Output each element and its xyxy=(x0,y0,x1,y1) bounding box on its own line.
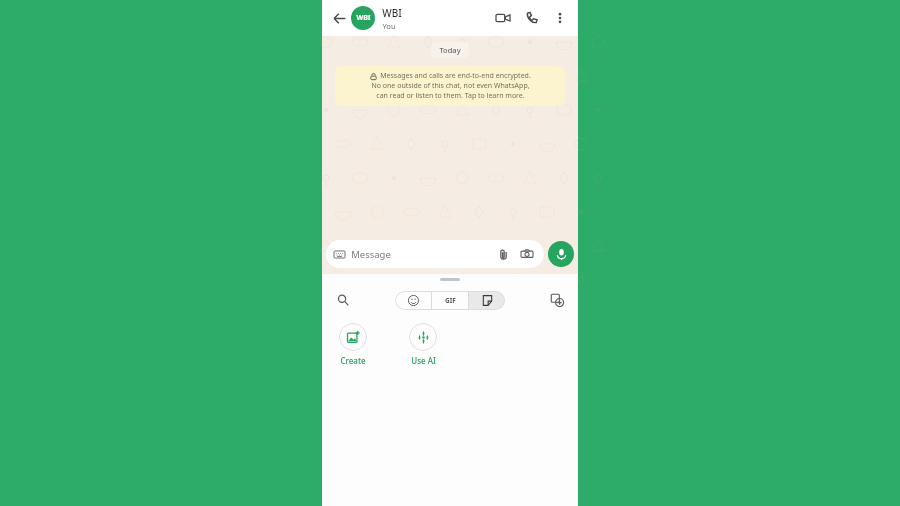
button[interactable]: Voice message xyxy=(548,241,574,267)
button[interactable]: Attach xyxy=(494,245,512,263)
button[interactable]: WBI xyxy=(382,6,491,31)
button[interactable]: More options xyxy=(549,7,571,29)
button[interactable]: Today xyxy=(431,42,469,58)
staticText: GIF xyxy=(445,296,456,305)
staticText: WBI xyxy=(382,6,402,20)
staticText: Messages and calls are end-to-end encryp… xyxy=(380,71,531,81)
button[interactable]: WBI xyxy=(351,6,375,30)
button[interactable]: Search stickers xyxy=(332,289,354,311)
button[interactable]: Camera xyxy=(518,245,536,263)
staticText: can read or listen to them. Tap to learn… xyxy=(376,91,525,101)
button[interactable]: Messages and calls are end-to-end encryp… xyxy=(335,66,565,106)
staticText: Use AI xyxy=(411,355,436,366)
staticText: You xyxy=(382,21,396,31)
button[interactable]: Message xyxy=(326,240,544,268)
button[interactable]: Video call xyxy=(491,6,515,30)
button[interactable]: Add sticker pack xyxy=(546,289,568,311)
button[interactable]: Emoji xyxy=(395,291,431,310)
button[interactable]: Stickers xyxy=(469,291,505,310)
button[interactable]: Voice call xyxy=(520,6,544,30)
button[interactable]: Create xyxy=(336,323,370,366)
staticText: Message xyxy=(351,248,391,261)
button[interactable]: Back xyxy=(329,8,349,28)
staticText: Today xyxy=(439,45,461,55)
button[interactable]: GIF xyxy=(432,291,468,310)
staticText: WBI xyxy=(356,13,371,23)
staticText: Create xyxy=(340,355,366,366)
staticText: No one outside of this chat, not even Wh… xyxy=(371,81,530,91)
button[interactable]: Use AI xyxy=(406,323,440,366)
